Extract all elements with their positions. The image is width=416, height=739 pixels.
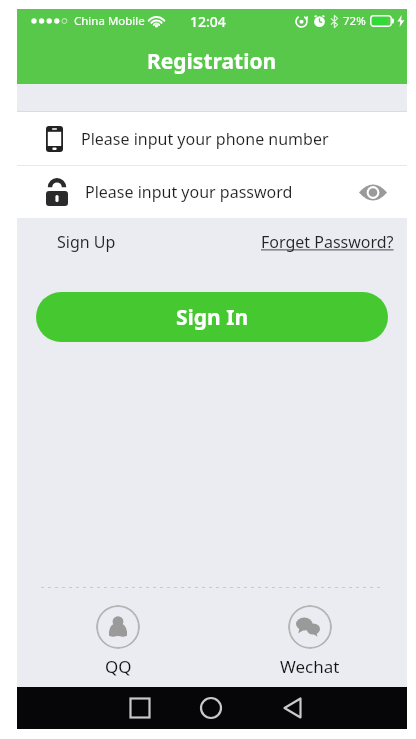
button[interactable]: Please input your password	[17, 166, 407, 218]
button[interactable]: Sign In	[36, 292, 388, 342]
staticText: 12:04	[190, 12, 226, 31]
button[interactable]	[359, 184, 387, 201]
button[interactable]: Sign Up	[57, 231, 116, 253]
button[interactable]: Please input your phone number	[17, 112, 407, 165]
button[interactable]: QQ	[96, 605, 140, 678]
button[interactable]: Wechat	[280, 605, 340, 678]
staticText: Please input your password	[85, 181, 293, 203]
staticText: China Mobile	[74, 13, 145, 29]
staticText: Sign In	[176, 303, 249, 332]
staticText: Forget Password?	[261, 231, 394, 253]
button[interactable]	[147, 687, 277, 729]
button[interactable]	[277, 687, 407, 729]
staticText: QQ	[105, 655, 132, 678]
staticText: Please input your phone number	[81, 128, 329, 150]
button[interactable]	[17, 687, 147, 729]
staticText: Wechat	[280, 655, 340, 678]
staticText: Registration	[147, 47, 277, 76]
button[interactable]: Forget Password?	[261, 231, 394, 253]
staticText: Sign Up	[57, 231, 116, 253]
staticText: 72%	[343, 13, 366, 29]
